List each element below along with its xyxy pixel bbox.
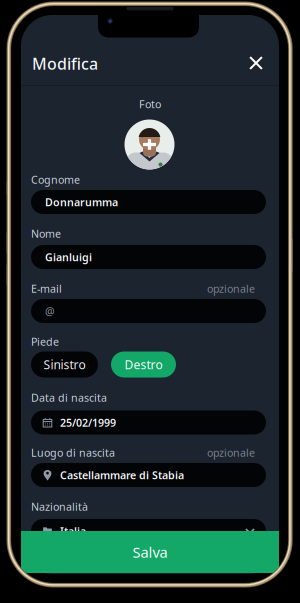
staticText: Cognome	[31, 172, 80, 187]
staticText: Castellammare di Stabia	[60, 468, 184, 482]
button[interactable]: 25/02/1999	[31, 410, 266, 434]
button[interactable]: Modifica	[32, 53, 112, 73]
staticText: Salva	[132, 542, 167, 562]
staticText: Piede	[31, 334, 59, 349]
button[interactable]: @	[31, 299, 266, 323]
button[interactable]: Sinistro	[31, 351, 98, 377]
staticText: Nazionalità	[31, 499, 88, 514]
button[interactable]: Italia	[31, 519, 266, 543]
staticText: Italia	[60, 524, 86, 538]
staticText: @	[45, 304, 55, 318]
button[interactable]: Salva	[21, 531, 279, 573]
staticText: Donnarumma	[45, 195, 118, 209]
staticText: Foto	[139, 97, 161, 111]
staticText: Data di nascita	[31, 390, 107, 405]
staticText: opzionale	[207, 281, 255, 296]
staticText: Destro	[124, 356, 162, 372]
staticText: Luogo di nascita	[31, 445, 115, 460]
staticText: Gianluigi	[45, 250, 92, 264]
button[interactable]: Cambia foto	[124, 119, 174, 169]
staticText: Sinistro	[43, 356, 85, 372]
button[interactable]: Chiudi	[241, 48, 271, 78]
button[interactable]: Donnarumma	[31, 190, 266, 214]
staticText: 25/02/1999	[60, 415, 116, 430]
button[interactable]: Gianluigi	[31, 245, 266, 269]
staticText: opzionale	[207, 445, 255, 460]
staticText: Modifica	[32, 53, 98, 74]
button[interactable]: Castellammare di Stabia	[31, 463, 266, 487]
staticText: E-mail	[31, 281, 62, 296]
staticText: Nome	[31, 226, 61, 241]
button[interactable]: Destro	[111, 351, 176, 377]
